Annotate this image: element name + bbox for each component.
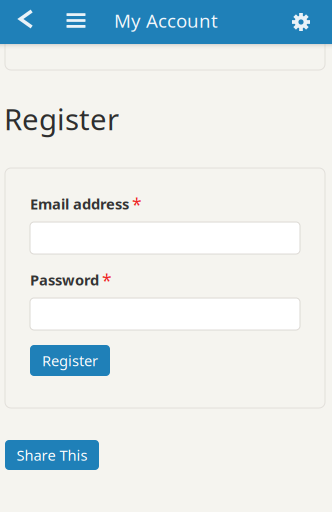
staticText: My Account <box>114 8 218 33</box>
staticText: * <box>102 269 112 293</box>
button[interactable]: Share This <box>5 440 99 470</box>
staticText: Password <box>30 270 99 290</box>
staticText: Register <box>4 99 119 139</box>
staticText: Share This <box>16 445 87 465</box>
button[interactable]: Settings <box>281 0 321 44</box>
staticText: Register <box>42 350 98 370</box>
button[interactable]: Menu <box>55 0 97 42</box>
button[interactable]: Register <box>30 345 110 376</box>
button[interactable]: Back <box>11 0 41 41</box>
staticText: Email address <box>30 194 129 214</box>
staticText: * <box>132 193 142 217</box>
